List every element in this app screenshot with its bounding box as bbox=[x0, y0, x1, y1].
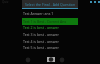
button[interactable]: Home bbox=[47, 57, 55, 62]
staticText: Test 2 is best - answer bbox=[23, 25, 59, 29]
staticText: Test 3 is best - answer bbox=[23, 32, 59, 36]
button[interactable]: Test 5 is best - answer bbox=[22, 45, 78, 49]
staticText: Test Answer: ans 1 bbox=[23, 11, 54, 15]
button[interactable]: Test 1 is Best - Correct Ans bbox=[22, 18, 78, 25]
staticText: Test 4 is best - answer bbox=[23, 39, 59, 43]
staticText: Quiz bbox=[2, 0, 9, 4]
button[interactable]: Test Answer: ans 1 bbox=[22, 11, 78, 15]
button[interactable]: Test 3 is best - answer bbox=[22, 32, 78, 36]
staticText: Test 1 is Best - Correct Ans bbox=[23, 19, 67, 24]
button[interactable]: Test 4 is best - answer bbox=[22, 39, 78, 43]
button[interactable]: Recents bbox=[59, 57, 65, 63]
button[interactable]: Back bbox=[25, 57, 31, 63]
staticText: Test 5 is best - answer bbox=[23, 45, 59, 49]
staticText: Select the Final - Add Question bbox=[25, 2, 76, 7]
button[interactable]: Select the Final - Add Question bbox=[22, 0, 78, 8]
button[interactable]: Test 2 is best - answer bbox=[22, 25, 78, 29]
